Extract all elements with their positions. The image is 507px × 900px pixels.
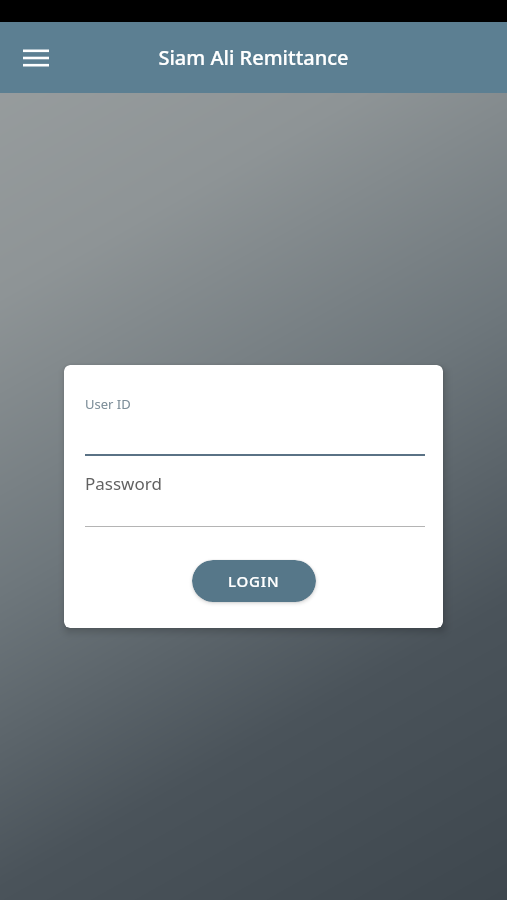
button[interactable]: Password [85, 459, 425, 527]
staticText: User ID [85, 395, 131, 413]
button[interactable]: User ID [85, 387, 425, 457]
staticText: Password [85, 472, 162, 495]
button[interactable]: Open navigation menu [12, 34, 60, 82]
staticText: LOGIN [228, 571, 280, 591]
staticText: Siam Ali Remittance [158, 44, 349, 71]
button[interactable]: LOGIN [192, 560, 316, 602]
